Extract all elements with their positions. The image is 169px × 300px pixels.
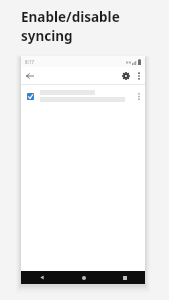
button[interactable]: Settings [119,69,133,83]
staticText: Enable/disable [21,8,120,26]
button[interactable]: Back [21,271,63,284]
button[interactable]: Home [63,271,104,284]
button[interactable]: Recent apps [104,271,145,284]
button[interactable]: Item options [133,87,144,105]
button[interactable]: More options [133,69,145,83]
staticText: syncing [21,27,73,45]
button[interactable]: Navigate up [23,69,36,82]
staticText: 8:17 [25,59,35,65]
button[interactable]: Enable syncing checkbox, checked [21,85,145,107]
button[interactable]: Enable syncing checkbox, checked [24,90,37,103]
